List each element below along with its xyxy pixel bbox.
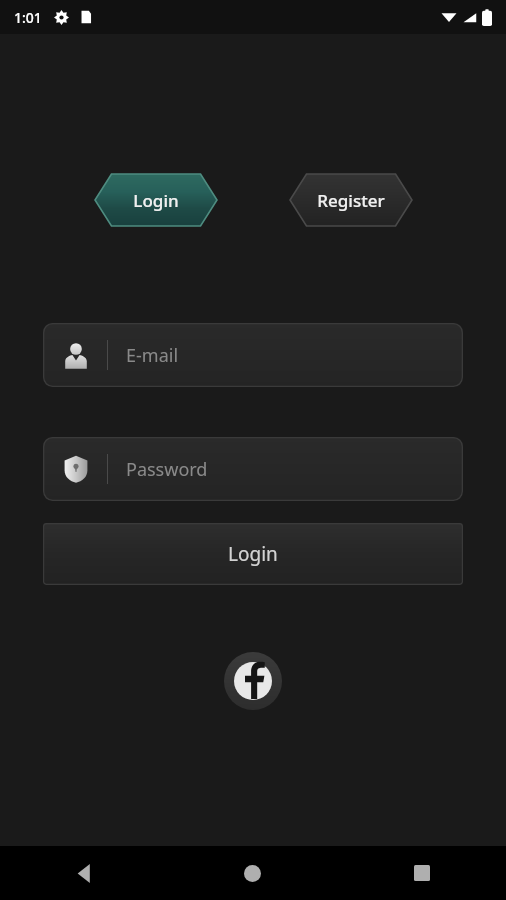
staticText: Login	[133, 189, 179, 212]
button[interactable]: Password	[43, 437, 463, 501]
button[interactable]: Register	[290, 174, 412, 226]
staticText: Register	[317, 189, 385, 212]
button[interactable]: Home	[168, 846, 337, 900]
button[interactable]: Login	[95, 174, 217, 226]
staticText: E-mail	[126, 343, 179, 368]
staticText: Password	[126, 457, 208, 482]
button[interactable]: Back	[0, 846, 168, 900]
staticText: Login	[228, 541, 278, 567]
staticText: 1:01	[14, 8, 42, 27]
button[interactable]: Login	[43, 523, 463, 585]
button[interactable]: Recent apps	[337, 846, 506, 900]
button[interactable]: Sign in with Facebook	[224, 652, 282, 710]
button[interactable]: E-mail	[43, 323, 463, 387]
